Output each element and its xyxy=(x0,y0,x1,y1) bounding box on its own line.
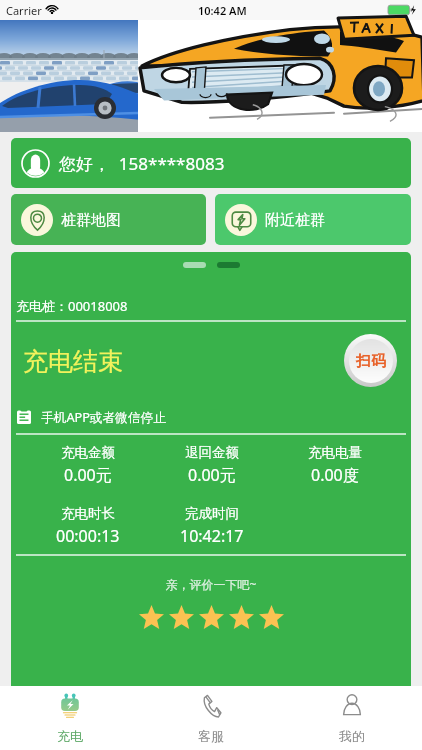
button[interactable]: Rate 1 stars xyxy=(136,604,166,630)
staticText: 客服 xyxy=(198,728,224,744)
staticText: 扫码 xyxy=(356,352,386,371)
staticText: 亲，评价一下吧~ xyxy=(11,576,411,592)
staticText: 附近桩群 xyxy=(265,211,325,230)
staticText: 充电结束 xyxy=(23,346,123,377)
button[interactable]: 桩群地图 xyxy=(11,194,206,245)
staticText: 充电 xyxy=(57,728,83,744)
staticText: 0.00元 xyxy=(64,464,112,486)
button[interactable]: Page 1 xyxy=(183,262,206,268)
button[interactable]: 客服 xyxy=(140,686,281,750)
staticText: 退回金额 xyxy=(185,444,239,461)
button[interactable]: Page 2 xyxy=(217,262,240,268)
staticText: 完成时间 xyxy=(185,505,239,522)
staticText: 我的 xyxy=(339,728,365,744)
staticText: 桩群地图 xyxy=(61,211,121,230)
button[interactable]: Rate 3 stars xyxy=(196,604,226,630)
staticText: 10:42 AM xyxy=(198,3,247,18)
staticText: 10:42:17 xyxy=(180,525,244,547)
button[interactable]: 附近桩群 xyxy=(215,194,411,245)
button[interactable]: 您好， 158****8083 xyxy=(11,138,411,188)
staticText: 0.00度 xyxy=(311,464,359,486)
button[interactable]: 我的 xyxy=(281,686,422,750)
staticText: 手机APP或者微信停止 xyxy=(41,408,166,425)
staticText: 00:00:13 xyxy=(56,525,120,547)
button[interactable]: Rate 5 stars xyxy=(256,604,286,630)
button[interactable]: 扫码 Scan QR code xyxy=(344,334,397,387)
staticText: 充电金额 xyxy=(61,444,115,461)
button[interactable]: Rate 4 stars xyxy=(226,604,256,630)
button[interactable]: Rate 2 stars xyxy=(166,604,196,630)
staticText: 充电桩：00018008 xyxy=(16,297,128,315)
button[interactable]: 充电 xyxy=(0,686,140,750)
staticText: 您好， 158****8083 xyxy=(59,152,225,175)
staticText: 充电时长 xyxy=(61,505,115,522)
staticText: Carrier xyxy=(6,3,42,18)
staticText: 充电电量 xyxy=(308,444,362,461)
staticText: 0.00元 xyxy=(188,464,236,486)
